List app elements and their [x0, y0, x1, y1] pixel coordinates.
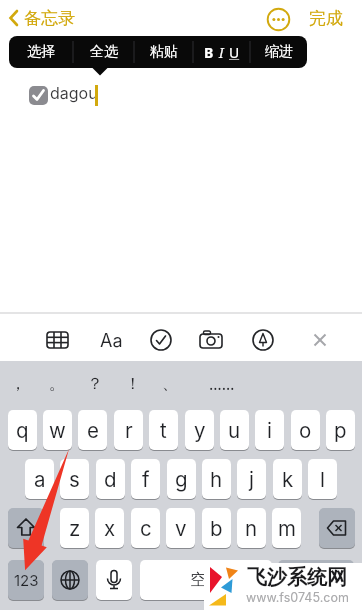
button[interactable] [250, 327, 276, 353]
staticText: o [299, 418, 312, 443]
button[interactable]: g [167, 459, 196, 499]
staticText: …… [209, 373, 235, 395]
staticText: 完成 [309, 8, 343, 28]
staticText: b [210, 516, 223, 541]
button[interactable]: w [43, 410, 72, 450]
staticText: f [142, 467, 150, 492]
staticText: dagou [50, 83, 98, 102]
button[interactable]: 全选 [73, 36, 134, 68]
button[interactable] [47, 327, 73, 353]
staticText: 飞沙系统网 [247, 565, 347, 589]
button[interactable]: 。 [43, 372, 71, 396]
staticText: u [228, 418, 241, 443]
button[interactable]: ！ [119, 372, 147, 396]
button[interactable]: 粘贴 [134, 36, 193, 68]
staticText: s [69, 467, 80, 492]
staticText: B [204, 43, 214, 62]
button[interactable] [266, 7, 291, 32]
button[interactable]: a [25, 459, 54, 499]
button[interactable]: j [237, 459, 266, 499]
button[interactable] [319, 508, 355, 548]
button[interactable]: 选择 [9, 36, 73, 68]
button[interactable]: d [96, 459, 125, 499]
button[interactable]: x [95, 508, 124, 548]
staticText: 123 [14, 571, 39, 589]
staticText: g [175, 467, 188, 492]
button[interactable]: e [78, 410, 107, 450]
button[interactable] [96, 560, 132, 600]
button[interactable]: 空格 [140, 560, 272, 600]
button[interactable] [52, 560, 88, 600]
button[interactable]: n [237, 508, 266, 548]
staticText: 。 [49, 374, 65, 394]
staticText: q [16, 418, 29, 443]
button[interactable]: y [185, 410, 214, 450]
staticText: x [104, 516, 116, 541]
staticText: ！ [125, 374, 141, 394]
staticText: 空格 [190, 570, 222, 590]
button[interactable]: 备忘录 [24, 8, 84, 28]
button[interactable]: o [291, 410, 320, 450]
button[interactable] [200, 327, 226, 353]
staticText: 选择 [27, 43, 55, 61]
button[interactable]: t [149, 410, 178, 450]
staticText: z [69, 516, 81, 541]
staticText: k [282, 467, 294, 492]
staticText: h [210, 467, 223, 492]
button[interactable] [151, 327, 177, 353]
staticText: v [175, 516, 187, 541]
button[interactable]: 完成 [303, 8, 349, 28]
button[interactable]: v [166, 508, 195, 548]
button[interactable]: ， [4, 372, 32, 396]
button[interactable]: l [308, 459, 337, 499]
staticText: U [229, 43, 240, 62]
staticText: 换行 [300, 570, 332, 590]
staticText: c [140, 516, 152, 541]
staticText: d [104, 467, 117, 492]
button[interactable]: h [202, 459, 231, 499]
staticText: m [278, 516, 296, 541]
staticText: p [334, 418, 347, 443]
button[interactable]: b [202, 508, 231, 548]
button[interactable]: r [114, 410, 143, 450]
staticText: 备忘录 [24, 8, 75, 28]
staticText: I [219, 43, 224, 62]
button[interactable]: ？ [81, 372, 109, 396]
button[interactable] [8, 508, 44, 548]
button[interactable]: 123 [8, 560, 44, 600]
staticText: r [125, 418, 133, 443]
staticText: ？ [87, 374, 103, 394]
staticText: w [49, 418, 66, 443]
staticText: Aa [100, 330, 123, 350]
button[interactable]: q [8, 410, 37, 450]
staticText: 缩进 [265, 43, 293, 61]
staticText: y [194, 418, 206, 443]
button[interactable]: k [273, 459, 302, 499]
button[interactable]: p [326, 410, 355, 450]
button[interactable]: f [131, 459, 160, 499]
button[interactable] [29, 86, 48, 105]
staticText: ， [10, 374, 26, 394]
button[interactable]: c [131, 508, 160, 548]
button[interactable]: u [220, 410, 249, 450]
button[interactable]: 、 [156, 372, 184, 396]
button[interactable]: B [193, 36, 250, 68]
button[interactable]: …… [203, 372, 241, 396]
button[interactable] [98, 327, 124, 353]
staticText: j [249, 467, 254, 492]
staticText: www.fs0745.com [246, 590, 349, 604]
button[interactable]: i [255, 410, 284, 450]
button[interactable]: 换行 [278, 560, 354, 600]
staticText: 粘贴 [150, 43, 178, 61]
button[interactable] [310, 327, 336, 353]
button[interactable]: m [272, 508, 301, 548]
button[interactable]: 缩进 [250, 36, 307, 68]
button[interactable] [6, 6, 24, 32]
button[interactable]: z [60, 508, 89, 548]
button[interactable]: s [60, 459, 89, 499]
staticText: n [245, 516, 258, 541]
staticText: t [160, 418, 167, 443]
staticText: a [34, 467, 46, 492]
staticText: i [267, 418, 272, 443]
staticText: l [320, 467, 325, 492]
